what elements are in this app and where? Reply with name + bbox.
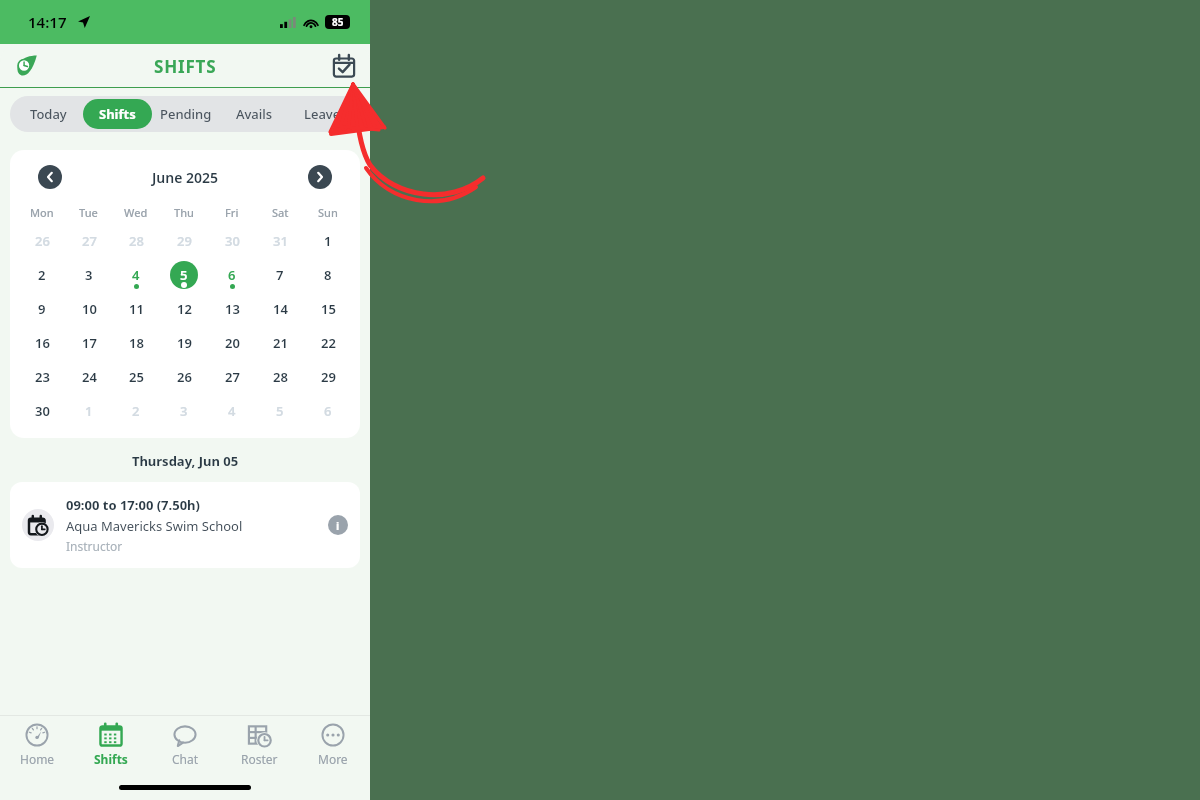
staticText: 18 — [129, 334, 144, 352]
button[interactable]: Confirm shifts — [326, 48, 362, 84]
staticText: 1 — [324, 232, 332, 250]
button[interactable]: 25 — [112, 360, 160, 394]
button[interactable]: 26 — [160, 360, 208, 394]
button[interactable]: 4 — [208, 394, 256, 428]
button[interactable]: 19 — [160, 326, 208, 360]
button[interactable]: Shifts — [74, 716, 148, 774]
staticText: 26 — [177, 368, 192, 386]
staticText: 21 — [273, 334, 288, 352]
button[interactable]: 7 — [256, 258, 304, 292]
staticText: Roster — [241, 751, 278, 767]
staticText: 10 — [82, 300, 97, 318]
staticText: SHIFTS — [154, 55, 217, 78]
staticText: 30 — [225, 232, 240, 250]
button[interactable]: App logo — [8, 48, 44, 84]
button[interactable]: 31 — [256, 224, 304, 258]
button[interactable]: Leave — [288, 99, 356, 129]
staticText: Leave — [304, 105, 341, 123]
button[interactable]: 20 — [208, 326, 256, 360]
button[interactable]: 14 — [256, 292, 304, 326]
button[interactable]: 3 — [65, 258, 112, 292]
staticText: Mon — [30, 205, 54, 220]
staticText: 6 — [324, 402, 332, 420]
staticText: 4 — [132, 266, 140, 284]
staticText: Today — [30, 105, 67, 123]
staticText: Sun — [318, 205, 338, 220]
button[interactable]: 9 — [18, 292, 65, 326]
staticText: 7 — [276, 266, 284, 284]
button[interactable]: 30 — [208, 224, 256, 258]
button[interactable]: 6 — [208, 258, 256, 292]
button[interactable]: 10 — [65, 292, 112, 326]
button[interactable]: 12 — [160, 292, 208, 326]
button[interactable]: Previous month — [38, 165, 62, 189]
button[interactable]: 28 — [112, 224, 160, 258]
button[interactable]: 29 — [304, 360, 352, 394]
button[interactable]: 15 — [304, 292, 352, 326]
button[interactable]: 3 — [160, 394, 208, 428]
button[interactable]: 30 — [18, 394, 65, 428]
button[interactable]: 8 — [304, 258, 352, 292]
button[interactable]: Chat — [148, 716, 222, 774]
button[interactable]: 17 — [65, 326, 112, 360]
staticText: 17 — [82, 334, 97, 352]
staticText: 11 — [129, 300, 144, 318]
button[interactable]: 13 — [208, 292, 256, 326]
button[interactable]: 22 — [304, 326, 352, 360]
button[interactable]: Shifts — [83, 99, 152, 129]
staticText: 19 — [177, 334, 192, 352]
staticText: 30 — [35, 402, 50, 420]
button[interactable]: 1 — [304, 224, 352, 258]
staticText: 85 — [332, 15, 344, 29]
button[interactable]: 26 — [18, 224, 65, 258]
button[interactable]: 09:00 to 17:00 (7.50h) — [10, 482, 360, 568]
button[interactable]: 29 — [160, 224, 208, 258]
button[interactable]: 5 — [160, 258, 208, 292]
staticText: Chat — [172, 751, 199, 767]
button[interactable]: 5 — [256, 394, 304, 428]
button[interactable]: 24 — [65, 360, 112, 394]
button[interactable]: Today — [14, 99, 83, 129]
staticText: Instructor — [66, 538, 123, 554]
staticText: Pending — [160, 105, 212, 123]
button[interactable]: 28 — [256, 360, 304, 394]
button[interactable]: Next month — [308, 165, 332, 189]
button[interactable]: 27 — [65, 224, 112, 258]
staticText: 15 — [321, 300, 336, 318]
staticText: Tue — [79, 205, 98, 220]
button[interactable]: 23 — [18, 360, 65, 394]
button[interactable]: 11 — [112, 292, 160, 326]
staticText: Home — [20, 751, 55, 767]
staticText: Shifts — [94, 751, 128, 767]
staticText: Sat — [272, 205, 289, 220]
button[interactable]: 2 — [18, 258, 65, 292]
staticText: June 2025 — [62, 168, 308, 187]
staticText: 20 — [225, 334, 240, 352]
staticText: 24 — [82, 368, 97, 386]
button[interactable]: 21 — [256, 326, 304, 360]
button[interactable]: Roster — [222, 716, 296, 774]
staticText: Shifts — [99, 105, 136, 123]
staticText: 14 — [273, 300, 288, 318]
button[interactable]: Shift info — [328, 515, 348, 535]
staticText: 29 — [177, 232, 192, 250]
button[interactable]: 2 — [112, 394, 160, 428]
staticText: 22 — [321, 334, 336, 352]
button[interactable]: Pending — [152, 99, 220, 129]
button[interactable]: More — [296, 716, 370, 774]
staticText: 2 — [38, 266, 46, 284]
staticText: 26 — [35, 232, 50, 250]
button[interactable]: 1 — [65, 394, 112, 428]
staticText: 23 — [35, 368, 50, 386]
button[interactable]: 4 — [112, 258, 160, 292]
button[interactable]: 18 — [112, 326, 160, 360]
staticText: 1 — [85, 402, 93, 420]
button[interactable]: 6 — [304, 394, 352, 428]
button[interactable]: 16 — [18, 326, 65, 360]
button[interactable]: 27 — [208, 360, 256, 394]
button[interactable]: Home — [0, 716, 74, 774]
button[interactable]: Avails — [220, 99, 288, 129]
staticText: 6 — [228, 266, 236, 284]
staticText: 14:17 — [28, 12, 67, 32]
staticText: 8 — [324, 266, 332, 284]
